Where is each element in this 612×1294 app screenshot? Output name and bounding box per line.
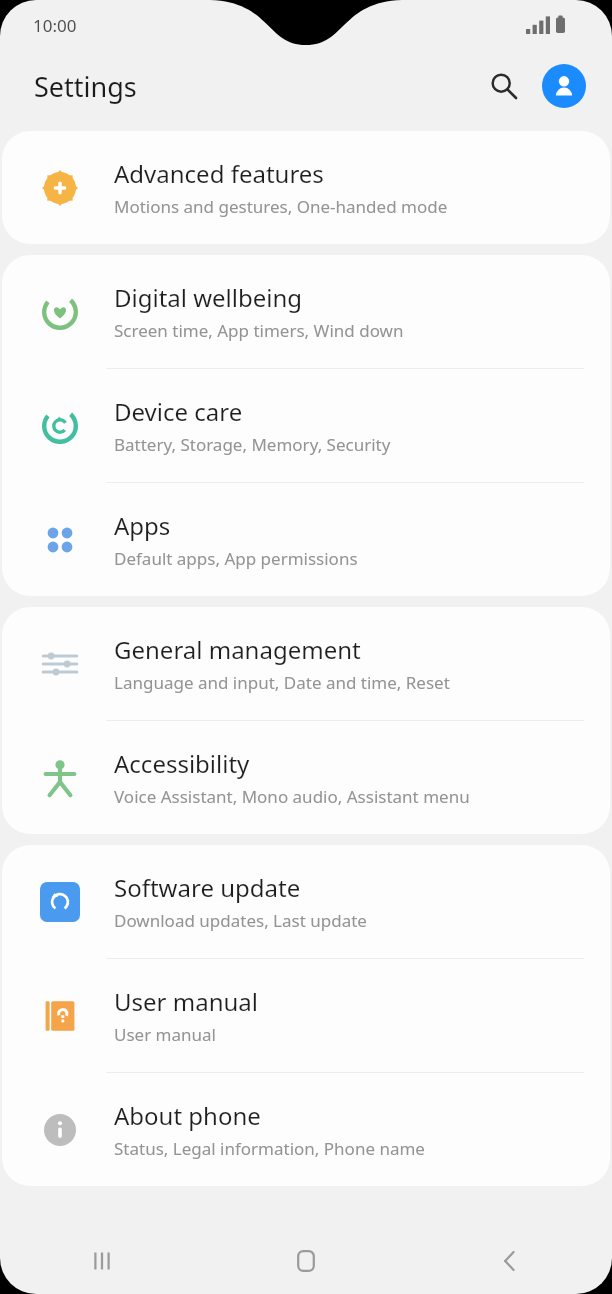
button[interactable]: Search — [480, 62, 528, 110]
button[interactable]: Advanced features — [2, 131, 610, 244]
staticText: Software update — [114, 871, 301, 904]
staticText: Battery, Storage, Memory, Security — [114, 433, 391, 456]
button[interactable]: Digital wellbeing — [2, 255, 610, 368]
button[interactable]: Software update — [2, 845, 610, 958]
staticText: Status, Legal information, Phone name — [114, 1137, 425, 1160]
button[interactable]: About phone — [2, 1073, 610, 1186]
staticText: General management — [114, 633, 361, 666]
staticText: User manual — [114, 985, 258, 1018]
staticText: About phone — [114, 1099, 261, 1132]
staticText: Digital wellbeing — [114, 281, 303, 314]
staticText: Device care — [114, 395, 243, 428]
button[interactable]: Back — [408, 1228, 612, 1294]
staticText: 10:00 — [33, 14, 77, 37]
button[interactable]: Device care — [2, 369, 610, 482]
button[interactable]: General management — [2, 607, 610, 720]
staticText: Advanced features — [114, 157, 324, 190]
staticText: Default apps, App permissions — [114, 547, 358, 570]
staticText: Settings — [34, 68, 137, 105]
staticText: Apps — [114, 509, 171, 542]
staticText: Accessibility — [114, 747, 250, 780]
staticText: User manual — [114, 1023, 216, 1046]
staticText: Language and input, Date and time, Reset — [114, 671, 450, 694]
staticText: Download updates, Last update — [114, 909, 367, 932]
button[interactable]: User manual — [2, 959, 610, 1072]
button[interactable]: Apps — [2, 483, 610, 596]
staticText: Motions and gestures, One-handed mode — [114, 195, 448, 218]
button[interactable]: Account — [542, 64, 586, 108]
button[interactable]: Accessibility — [2, 721, 610, 834]
button[interactable]: Recents — [0, 1228, 204, 1294]
staticText: Voice Assistant, Mono audio, Assistant m… — [114, 785, 470, 808]
staticText: Screen time, App timers, Wind down — [114, 319, 404, 342]
button[interactable]: Home — [204, 1228, 408, 1294]
